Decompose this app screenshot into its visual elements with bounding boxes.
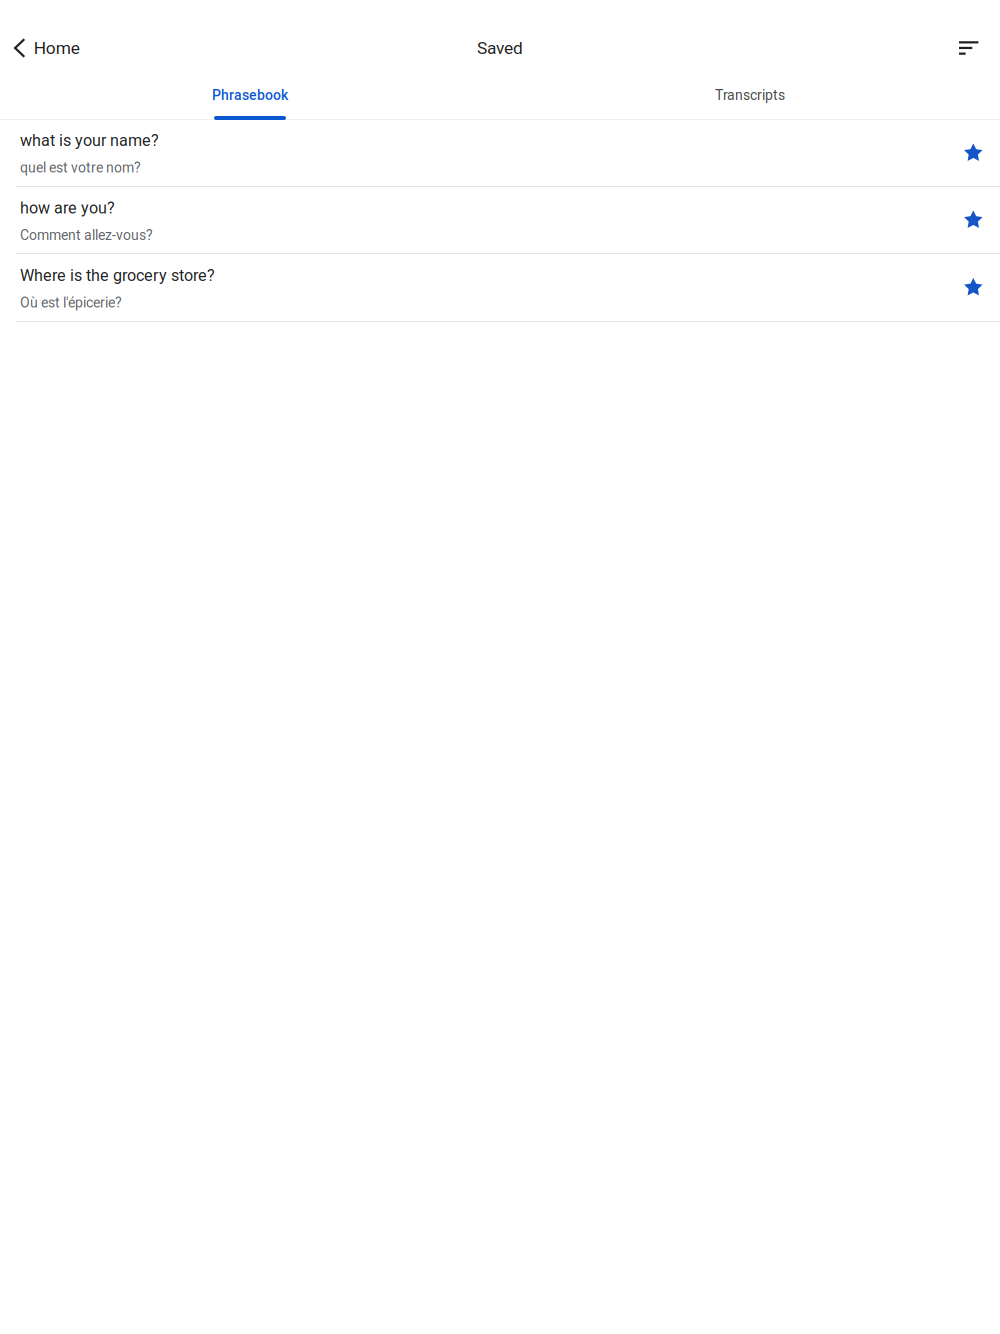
button[interactable]: how are you? [0, 187, 1000, 253]
button[interactable]: Remove from saved [964, 278, 983, 297]
button[interactable]: Remove from saved [964, 211, 983, 229]
staticText: quel est votre nom? [20, 159, 141, 176]
button[interactable]: Remove from saved [964, 144, 983, 162]
button[interactable]: what is your name? [0, 120, 1000, 186]
staticText: Where is the grocery store? [20, 266, 215, 285]
staticText: Phrasebook [212, 87, 288, 103]
button[interactable]: Home [0, 28, 90, 68]
staticText: Saved [477, 38, 523, 58]
button[interactable]: Where is the grocery store? [0, 254, 1000, 321]
staticText: Home [34, 38, 80, 58]
button[interactable]: Sort and filter [939, 28, 1000, 68]
staticText: how are you? [20, 199, 115, 217]
staticText: Transcripts [715, 87, 785, 103]
button[interactable]: Phrasebook [0, 74, 500, 120]
button[interactable]: Transcripts [500, 74, 1000, 120]
staticText: Comment allez-vous? [20, 227, 153, 243]
staticText: what is your name? [20, 131, 159, 150]
staticText: Où est l'épicerie? [20, 294, 122, 311]
